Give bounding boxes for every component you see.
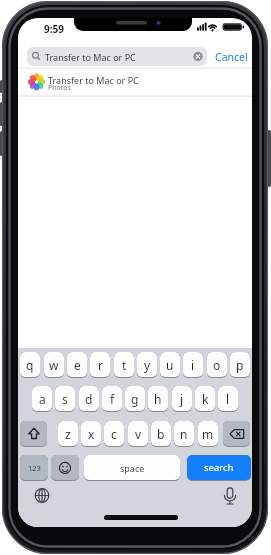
staticText: space	[120, 462, 145, 474]
staticText: v	[135, 426, 142, 442]
staticText: 9:59	[44, 22, 64, 36]
button[interactable]: i	[183, 352, 203, 378]
staticText: q	[26, 357, 34, 373]
staticText: Transfer to Mac or PC	[48, 74, 139, 86]
staticText: k	[202, 391, 209, 407]
staticText: s	[62, 391, 68, 407]
staticText: b	[157, 426, 165, 442]
staticText: x	[88, 426, 95, 442]
staticText: r	[98, 357, 103, 373]
staticText: f	[110, 391, 115, 407]
staticText: Cancel	[215, 50, 248, 64]
button[interactable]: f	[102, 386, 122, 412]
button[interactable]: q	[20, 352, 40, 378]
staticText: h	[154, 391, 162, 407]
button[interactable]: z	[58, 421, 78, 447]
staticText: a	[39, 391, 46, 407]
button[interactable]: j	[172, 386, 192, 412]
button[interactable]: y	[137, 352, 157, 378]
staticText: e	[74, 357, 81, 373]
button[interactable]: t	[114, 352, 134, 378]
button[interactable]: m	[198, 421, 218, 447]
staticText: n	[180, 426, 188, 442]
button[interactable]: r	[90, 352, 110, 378]
button[interactable]: w	[44, 352, 64, 378]
button[interactable]: l	[218, 386, 238, 412]
button[interactable]: k	[195, 386, 215, 412]
button[interactable]: x	[81, 421, 101, 447]
staticText: m	[202, 426, 214, 442]
button[interactable]	[20, 421, 47, 447]
button[interactable]: b	[151, 421, 171, 447]
button[interactable]: 123	[20, 455, 48, 481]
button[interactable]: h	[148, 386, 168, 412]
staticText: Transfer to Mac or PC	[45, 51, 136, 63]
staticText: l	[226, 391, 230, 407]
button[interactable]	[223, 421, 250, 447]
button[interactable]: g	[125, 386, 145, 412]
staticText: y	[144, 357, 151, 373]
button[interactable]: o	[207, 352, 227, 378]
button[interactable]	[18, 68, 252, 96]
button[interactable]: v	[128, 421, 148, 447]
staticText: p	[236, 357, 244, 373]
staticText: 123	[28, 463, 41, 473]
staticText: c	[111, 426, 117, 442]
staticText: u	[166, 357, 174, 373]
button[interactable]	[51, 455, 79, 481]
button[interactable]: Cancel	[211, 47, 251, 66]
staticText: g	[131, 391, 139, 407]
button[interactable]: space	[84, 455, 180, 481]
button[interactable]: n	[174, 421, 194, 447]
staticText: t	[122, 357, 127, 373]
staticText: z	[65, 426, 71, 442]
staticText: Photos	[48, 83, 71, 93]
button[interactable]: u	[160, 352, 180, 378]
button[interactable]: a	[32, 386, 52, 412]
button[interactable]: e	[67, 352, 87, 378]
staticText: o	[213, 357, 221, 373]
button[interactable]: p	[230, 352, 250, 378]
button[interactable]: Transfer to Mac or PC	[27, 47, 207, 66]
staticText: j	[180, 391, 184, 407]
button[interactable]: c	[104, 421, 124, 447]
staticText: i	[191, 357, 195, 373]
staticText: search	[204, 461, 234, 474]
staticText: w	[49, 357, 59, 373]
button[interactable]: d	[79, 386, 99, 412]
staticText: d	[85, 391, 93, 407]
button[interactable]: search	[187, 455, 251, 481]
button[interactable]: s	[55, 386, 75, 412]
